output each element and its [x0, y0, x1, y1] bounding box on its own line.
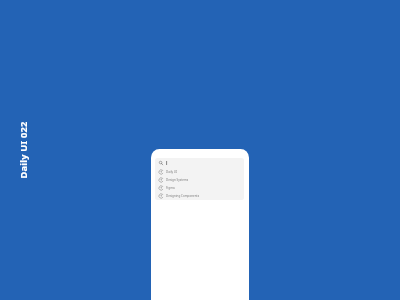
staticText: Designing Components [166, 194, 200, 198]
button[interactable]: Design Systems [155, 176, 244, 184]
staticText: Design Systems [166, 178, 189, 182]
button[interactable]: Figma [155, 184, 244, 192]
button[interactable]: Designing Components [155, 192, 244, 200]
button[interactable]: Search [155, 158, 244, 168]
button[interactable]: Daily UI [155, 168, 244, 176]
staticText: Figma [166, 186, 175, 190]
staticText: Daily UI [166, 170, 177, 174]
staticText: Daily UI 022 [17, 121, 30, 179]
